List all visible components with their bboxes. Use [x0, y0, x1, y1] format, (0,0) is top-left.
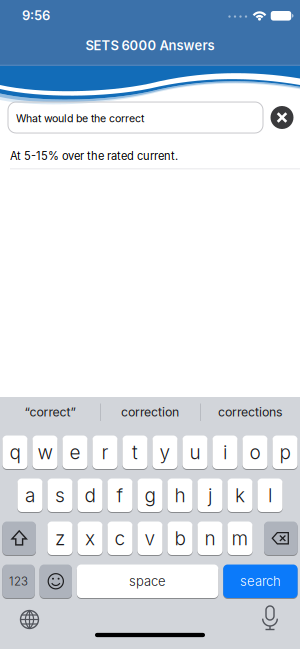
staticText: What would be the correct	[16, 112, 144, 125]
button[interactable]: Emoji	[40, 564, 72, 598]
staticText: correction	[121, 405, 179, 419]
staticText: f	[116, 484, 123, 507]
button[interactable]: f	[107, 478, 133, 512]
staticText: x	[85, 527, 95, 550]
button[interactable]: e	[62, 435, 88, 469]
staticText: d	[84, 484, 95, 507]
staticText: r	[101, 441, 108, 464]
staticText: s	[55, 484, 65, 507]
staticText: search	[240, 573, 281, 589]
staticText: u	[189, 441, 200, 464]
button[interactable]: k	[227, 478, 253, 512]
button[interactable]: y	[152, 435, 178, 469]
staticText: space	[129, 573, 166, 589]
button[interactable]: m	[227, 521, 253, 555]
button[interactable]: Dictation	[255, 603, 285, 633]
button[interactable]: j	[197, 478, 223, 512]
button[interactable]: z	[47, 521, 73, 555]
staticText: t	[132, 441, 138, 464]
button[interactable]: space	[77, 564, 218, 598]
button[interactable]: b	[167, 521, 193, 555]
button[interactable]: Clear text	[270, 106, 293, 129]
staticText: n	[204, 527, 215, 550]
button[interactable]: t	[122, 435, 148, 469]
staticText: i	[223, 441, 227, 464]
staticText: k	[235, 484, 245, 507]
staticText: z	[55, 527, 65, 550]
button[interactable]: u	[182, 435, 208, 469]
button[interactable]: a	[17, 478, 43, 512]
staticText: y	[159, 441, 170, 464]
button[interactable]: q	[2, 435, 28, 469]
button[interactable]: correction	[101, 397, 199, 426]
button[interactable]: w	[32, 435, 58, 469]
button[interactable]: c	[107, 521, 133, 555]
button[interactable]: h	[167, 478, 193, 512]
staticText: q	[9, 441, 20, 464]
staticText: g	[144, 484, 155, 507]
button[interactable]: i	[212, 435, 238, 469]
staticText: a	[25, 484, 35, 507]
button[interactable]: Delete	[264, 521, 298, 555]
button[interactable]: p	[272, 435, 298, 469]
button[interactable]: o	[242, 435, 268, 469]
staticText: At 5-15% over the rated current.	[10, 149, 178, 163]
staticText: j	[208, 484, 212, 507]
staticText: “correct”	[24, 405, 75, 419]
button[interactable]: d	[77, 478, 103, 512]
staticText: h	[174, 484, 185, 507]
button[interactable]: r	[92, 435, 118, 469]
staticText: e	[69, 441, 80, 464]
staticText: SETS 6000 Answers	[85, 38, 214, 53]
staticText: p	[279, 441, 290, 464]
staticText: w	[37, 441, 52, 464]
button[interactable]: g	[137, 478, 163, 512]
staticText: v	[144, 527, 155, 550]
button[interactable]: v	[137, 521, 163, 555]
staticText: 123	[9, 574, 28, 588]
staticText: 9:56	[22, 8, 50, 23]
button[interactable]: Search question	[8, 102, 263, 133]
staticText: c	[114, 527, 125, 550]
button[interactable]: 123	[2, 564, 35, 598]
button[interactable]: Shift	[2, 521, 36, 555]
button[interactable]: corrections	[201, 397, 299, 426]
button[interactable]: x	[77, 521, 103, 555]
staticText: o	[249, 441, 260, 464]
button[interactable]: search	[223, 564, 298, 598]
staticText: corrections	[218, 405, 282, 419]
staticText: l	[268, 484, 272, 507]
button[interactable]: l	[257, 478, 283, 512]
button[interactable]: “correct”	[1, 397, 99, 426]
button[interactable]: Next keyboard	[14, 604, 44, 634]
staticText: b	[174, 527, 185, 550]
button[interactable]: s	[47, 478, 73, 512]
button[interactable]: n	[197, 521, 223, 555]
staticText: m	[231, 527, 248, 550]
